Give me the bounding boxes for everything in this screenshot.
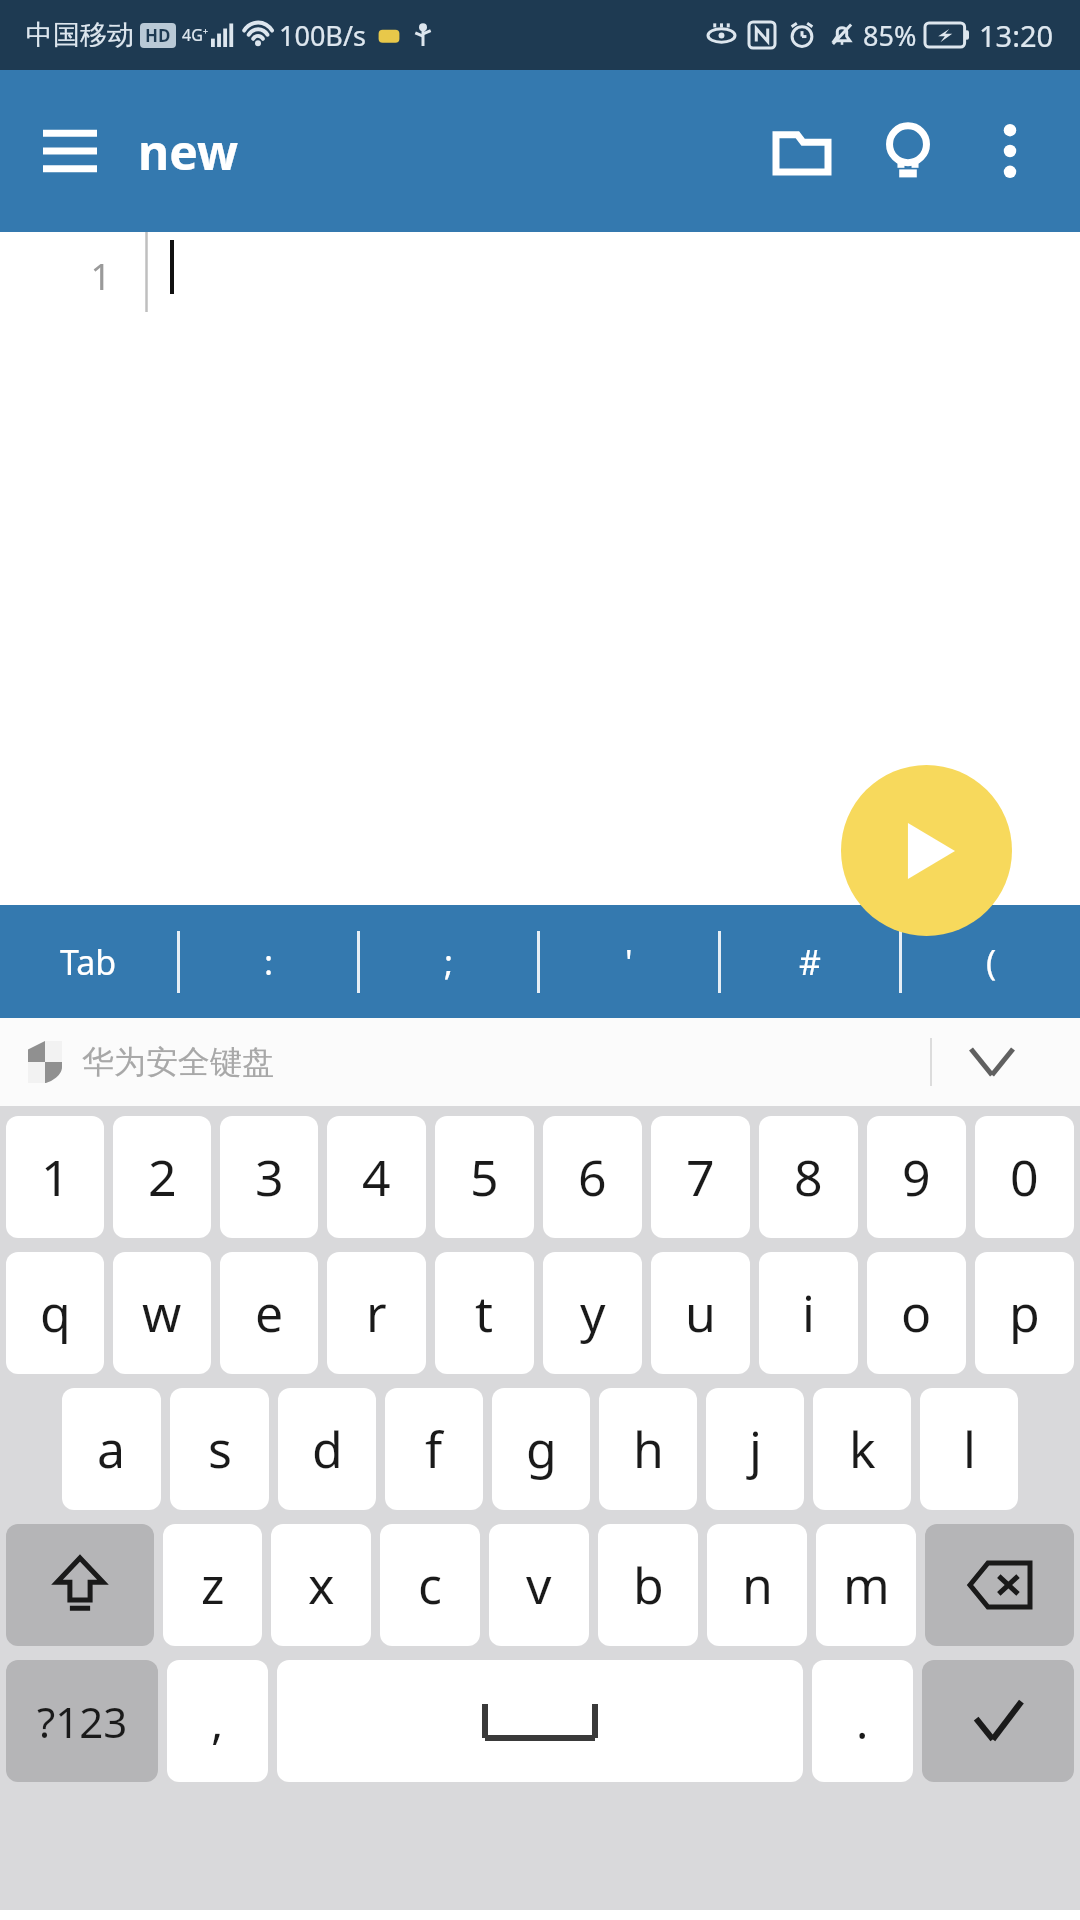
staticText: ; [444, 939, 454, 985]
staticText: c [418, 1551, 442, 1619]
staticText: b [633, 1551, 664, 1619]
button[interactable]: c [380, 1524, 480, 1646]
button[interactable]: 9 [867, 1116, 966, 1238]
button[interactable]: . [812, 1660, 913, 1782]
staticText: x [308, 1551, 335, 1619]
staticText: Tab [60, 939, 117, 985]
button[interactable]: Backspace [925, 1524, 1074, 1646]
staticText: d [312, 1415, 343, 1483]
button[interactable]: j [706, 1388, 804, 1510]
button[interactable]: ?123 [6, 1660, 158, 1782]
staticText: t [475, 1279, 494, 1347]
button[interactable]: ( [902, 905, 1080, 1018]
button[interactable]: , [167, 1660, 268, 1782]
button[interactable]: e [220, 1252, 318, 1374]
button[interactable]: 2 [113, 1116, 211, 1238]
button[interactable]: Hint [862, 105, 954, 197]
button[interactable]: # [721, 905, 899, 1018]
button[interactable]: y [543, 1252, 642, 1374]
staticText: j [749, 1415, 762, 1483]
button[interactable]: h [599, 1388, 697, 1510]
staticText: a [97, 1415, 126, 1483]
staticText: m [843, 1551, 890, 1619]
button[interactable]: Tab [0, 905, 177, 1018]
button[interactable]: Open folder [756, 105, 848, 197]
button[interactable]: Shift [6, 1524, 154, 1646]
button[interactable]: u [651, 1252, 750, 1374]
button[interactable]: Menu [30, 111, 110, 191]
button[interactable]: q [6, 1252, 104, 1374]
button[interactable]: x [271, 1524, 371, 1646]
button[interactable]: m [816, 1524, 916, 1646]
staticText: 100B/s [279, 17, 366, 54]
button[interactable]: 0 [975, 1116, 1074, 1238]
button[interactable]: 4 [327, 1116, 426, 1238]
staticText: 1 [41, 1143, 70, 1211]
button[interactable]: Enter [922, 1660, 1074, 1782]
staticText: u [685, 1279, 716, 1347]
staticText: f [425, 1415, 443, 1483]
staticText: w [142, 1279, 182, 1347]
staticText: 华为安全键盘 [82, 1042, 274, 1082]
staticText: 4 [362, 1143, 391, 1211]
staticText: g [526, 1415, 557, 1483]
staticText: y [580, 1279, 606, 1347]
staticText: ?123 [37, 1693, 128, 1750]
staticText: q [40, 1279, 71, 1347]
staticText: ' [625, 939, 633, 985]
button[interactable]: More options [964, 105, 1056, 197]
staticText: 5 [470, 1143, 499, 1211]
button[interactable]: f [385, 1388, 483, 1510]
button[interactable]: 8 [759, 1116, 858, 1238]
staticText: 4G⁺ [182, 24, 209, 46]
button[interactable]: t [435, 1252, 534, 1374]
button[interactable]: z [163, 1524, 262, 1646]
button[interactable]: g [492, 1388, 590, 1510]
button[interactable]: a [62, 1388, 161, 1510]
button[interactable]: k [813, 1388, 911, 1510]
button[interactable]: l [920, 1388, 1018, 1510]
staticText: 中国移动 [26, 18, 134, 52]
button[interactable]: 5 [435, 1116, 534, 1238]
button[interactable]: 1 [6, 1116, 104, 1238]
staticText: 3 [255, 1143, 284, 1211]
staticText: . [856, 1690, 869, 1753]
button[interactable]: Space [277, 1660, 803, 1782]
button[interactable]: 3 [220, 1116, 318, 1238]
button[interactable]: : [180, 905, 357, 1018]
button[interactable]: o [867, 1252, 966, 1374]
button[interactable]: new [138, 119, 238, 184]
staticText: n [742, 1551, 773, 1619]
staticText: 0 [1010, 1143, 1039, 1211]
staticText: , [211, 1690, 224, 1753]
button[interactable]: Hide keyboard [932, 1018, 1052, 1106]
button[interactable]: i [759, 1252, 858, 1374]
button[interactable]: n [707, 1524, 807, 1646]
staticText: e [255, 1279, 284, 1347]
button[interactable]: 6 [543, 1116, 642, 1238]
button[interactable]: s [170, 1388, 269, 1510]
button[interactable]: d [278, 1388, 376, 1510]
staticText: 9 [902, 1143, 931, 1211]
staticText: 13:20 [979, 16, 1054, 55]
button[interactable]: Run [841, 765, 1012, 936]
button[interactable]: 7 [651, 1116, 750, 1238]
button[interactable]: b [598, 1524, 698, 1646]
staticText: p [1009, 1279, 1040, 1347]
staticText: 2 [148, 1143, 177, 1211]
staticText: : [264, 939, 274, 985]
staticText: z [201, 1551, 225, 1619]
staticText: # [799, 939, 821, 985]
button[interactable]: ; [360, 905, 537, 1018]
staticText: 8 [794, 1143, 823, 1211]
staticText: r [366, 1279, 387, 1347]
button[interactable]: ' [540, 905, 718, 1018]
staticText: HD [145, 24, 171, 47]
button[interactable]: w [113, 1252, 211, 1374]
button[interactable]: p [975, 1252, 1074, 1374]
button[interactable]: r [327, 1252, 426, 1374]
button[interactable]: 1 [0, 232, 1080, 905]
staticText: 7 [686, 1143, 715, 1211]
button[interactable]: v [489, 1524, 589, 1646]
staticText: 6 [578, 1143, 607, 1211]
